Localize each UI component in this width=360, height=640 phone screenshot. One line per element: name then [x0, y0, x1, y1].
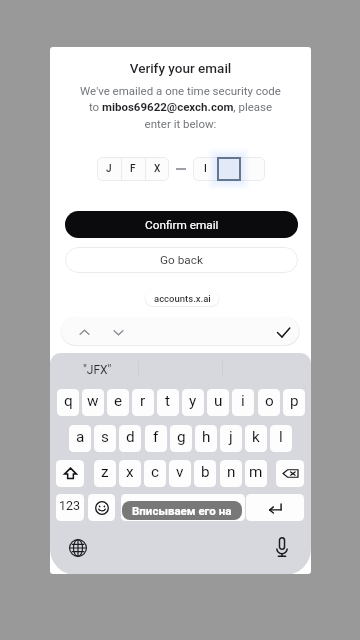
button[interactable]: s	[94, 425, 116, 452]
button[interactable]: u	[207, 389, 229, 416]
button[interactable]: Backspace	[276, 460, 304, 487]
button[interactable]: n	[220, 460, 242, 487]
staticText: k	[252, 428, 260, 446]
staticText: a	[76, 428, 85, 446]
button[interactable]: Return	[246, 494, 304, 521]
staticText: F	[130, 163, 136, 175]
button[interactable]: h	[195, 425, 217, 452]
button[interactable]: Shift	[56, 460, 84, 487]
staticText: 123	[59, 498, 81, 513]
staticText: z	[101, 463, 109, 481]
staticText: J	[106, 163, 112, 175]
staticText: v	[176, 463, 184, 481]
button[interactable]: Change keyboard	[66, 536, 90, 560]
staticText: o	[265, 392, 274, 410]
button[interactable]: w	[82, 389, 104, 416]
button[interactable]: Numbers	[56, 494, 84, 521]
button[interactable]: y	[182, 389, 204, 416]
button[interactable]: k	[245, 425, 267, 452]
button[interactable]: v	[169, 460, 191, 487]
staticText: b	[201, 463, 210, 481]
staticText: j	[229, 428, 233, 446]
staticText: "JFX"	[83, 363, 112, 377]
staticText: to mibos69622@cexch.com, please	[50, 100, 311, 113]
button[interactable]: t	[157, 389, 179, 416]
staticText: x	[126, 463, 134, 481]
staticText: We've emailed a one time security code	[50, 84, 311, 97]
staticText: g	[177, 428, 186, 446]
staticText: h	[202, 428, 211, 446]
button[interactable]: c	[144, 460, 166, 487]
button[interactable]: d	[119, 425, 141, 452]
button[interactable]: accounts.x.ai	[145, 290, 219, 306]
staticText: n	[227, 463, 236, 481]
button[interactable]: e	[107, 389, 129, 416]
staticText: y	[189, 392, 197, 410]
button[interactable]: l	[270, 425, 292, 452]
button[interactable]: m	[245, 460, 267, 487]
button[interactable]	[241, 157, 265, 181]
staticText: Confirm email	[145, 218, 219, 232]
button[interactable]: r	[132, 389, 154, 416]
staticText: enter it below:	[50, 117, 311, 130]
button[interactable]: x	[119, 460, 141, 487]
staticText: I	[204, 163, 207, 175]
button[interactable]: Emoji	[88, 494, 115, 521]
staticText: Go back	[160, 253, 203, 267]
staticText: Вписываем его на	[132, 504, 232, 517]
staticText: d	[126, 428, 135, 446]
button[interactable]: q	[57, 389, 79, 416]
button[interactable]: I	[193, 157, 217, 181]
staticText: X	[154, 163, 161, 175]
button[interactable]: j	[220, 425, 242, 452]
button[interactable]: Confirm email	[65, 211, 298, 238]
staticText: s	[101, 428, 109, 446]
staticText: u	[214, 392, 223, 410]
staticText: m	[249, 463, 263, 481]
staticText: accounts.x.ai	[154, 293, 211, 304]
staticText: p	[290, 392, 299, 410]
button[interactable]: X	[145, 157, 169, 181]
button[interactable]: i	[232, 389, 254, 416]
button[interactable]: b	[194, 460, 216, 487]
button[interactable]: J	[97, 157, 121, 181]
staticText: i	[241, 392, 245, 410]
staticText: Verify your email	[50, 60, 311, 76]
button[interactable]: Space	[121, 494, 245, 521]
staticText: l	[279, 428, 283, 446]
button[interactable]: g	[170, 425, 192, 452]
staticText: r	[140, 392, 146, 410]
button[interactable]: a	[69, 425, 91, 452]
button[interactable]: o	[258, 389, 280, 416]
button[interactable]: F	[121, 157, 145, 181]
staticText: w	[87, 392, 99, 410]
button[interactable]: Done	[272, 321, 294, 343]
staticText: c	[151, 463, 160, 481]
button[interactable]: Next field	[107, 321, 129, 343]
staticText: t	[165, 392, 171, 410]
button[interactable]: Previous field	[73, 321, 95, 343]
staticText: q	[64, 392, 73, 410]
button[interactable]: z	[94, 460, 116, 487]
button[interactable]	[217, 157, 241, 181]
staticText: e	[114, 392, 123, 410]
button[interactable]: Go back	[65, 247, 298, 273]
button[interactable]: Voice input	[270, 535, 294, 559]
staticText: f	[153, 428, 159, 446]
button[interactable]: p	[283, 389, 305, 416]
button[interactable]: f	[145, 425, 167, 452]
